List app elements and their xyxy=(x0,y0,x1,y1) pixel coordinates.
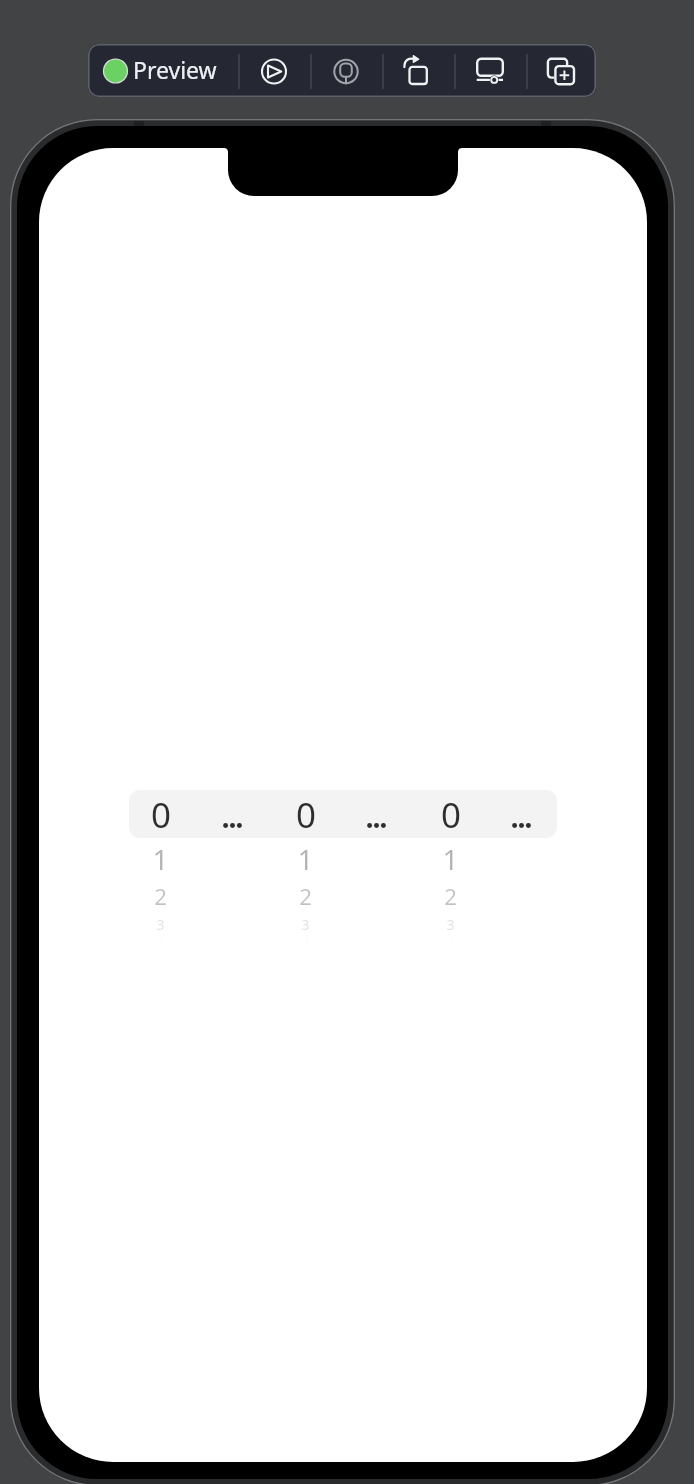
staticText: 1 xyxy=(442,840,459,878)
staticText: 3 xyxy=(446,914,455,934)
button[interactable]: 1 xyxy=(415,840,486,878)
button[interactable]: Run preview xyxy=(239,44,309,97)
button[interactable]: 2 xyxy=(125,881,196,911)
button[interactable]: 1 xyxy=(270,840,341,878)
staticText: 1 xyxy=(297,840,314,878)
staticText: 2 xyxy=(154,881,167,911)
button[interactable]: Inspect layout xyxy=(311,44,381,97)
button[interactable]: 2 xyxy=(415,881,486,911)
button[interactable]: Preview xyxy=(88,44,238,97)
button[interactable]: 2 xyxy=(270,881,341,911)
staticText: 0 xyxy=(296,791,316,839)
button[interactable]: Animation preview xyxy=(383,44,453,97)
staticText: 0 xyxy=(151,791,171,839)
staticText: 0 xyxy=(441,791,461,839)
button[interactable]: 3 xyxy=(125,914,196,934)
staticText: 2 xyxy=(299,881,312,911)
button[interactable]: 0 xyxy=(270,791,341,839)
button[interactable]: Interactive mode xyxy=(455,44,525,97)
button[interactable]: 3 xyxy=(270,914,341,934)
button[interactable]: 0 xyxy=(125,791,196,839)
button[interactable]: 0 xyxy=(415,791,486,839)
button[interactable]: 1 xyxy=(125,840,196,878)
staticText: 3 xyxy=(301,914,310,934)
staticText: 1 xyxy=(152,840,169,878)
button[interactable]: Copy preview xyxy=(526,44,596,97)
staticText: 2 xyxy=(444,881,457,911)
staticText: Preview xyxy=(133,54,217,85)
button[interactable]: 3 xyxy=(415,914,486,934)
staticText: 3 xyxy=(156,914,165,934)
